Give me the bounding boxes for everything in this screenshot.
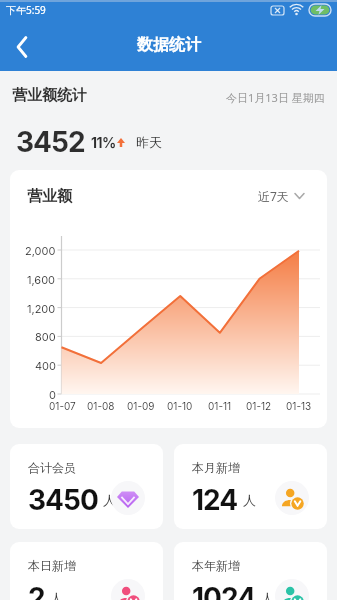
staticText: 3452	[16, 125, 85, 159]
staticText: 人	[103, 492, 116, 508]
staticText: 人	[243, 492, 256, 508]
staticText: 01-10	[167, 400, 193, 412]
staticText: 124	[192, 483, 238, 517]
staticText: 11%	[91, 134, 116, 151]
staticText: 1,200	[27, 302, 56, 315]
staticText: 数据统计	[137, 35, 201, 55]
staticText: 01-09	[127, 400, 155, 412]
staticText: 400	[35, 359, 56, 372]
button[interactable]: 合计会员	[10, 444, 163, 529]
staticText: 本年新增	[192, 558, 240, 573]
staticText: 营业额	[27, 187, 72, 206]
staticText: 人	[50, 590, 63, 600]
button[interactable]: 近7天	[258, 188, 305, 204]
staticText: 营业额统计	[12, 86, 87, 105]
staticText: 01-13	[286, 400, 312, 412]
staticText: 0	[49, 388, 56, 401]
button[interactable]	[0, 23, 44, 67]
staticText: 本日新增	[28, 558, 76, 573]
staticText: 3450	[28, 483, 98, 517]
staticText: 合计会员	[28, 460, 76, 475]
staticText: 今日1月13日 星期四	[226, 90, 325, 105]
staticText: 2	[28, 581, 45, 600]
staticText: 1024	[192, 581, 256, 600]
button[interactable]: 本月新增	[174, 444, 327, 529]
staticText: 2,000	[25, 244, 56, 257]
staticText: 01-08	[87, 400, 115, 412]
staticText: 1,600	[27, 273, 56, 286]
button[interactable]: 本年新增	[174, 542, 327, 600]
staticText: 800	[35, 330, 56, 343]
button[interactable]: 本日新增	[10, 542, 163, 600]
staticText: 昨天	[136, 134, 162, 150]
staticText: 01-07	[49, 400, 76, 412]
staticText: 01-11	[208, 400, 232, 412]
staticText: 本月新增	[192, 460, 240, 475]
staticText: 下午5:59	[6, 3, 46, 17]
staticText: 01-12	[246, 400, 272, 412]
staticText: 近7天	[258, 188, 289, 204]
staticText: 人	[261, 590, 274, 600]
